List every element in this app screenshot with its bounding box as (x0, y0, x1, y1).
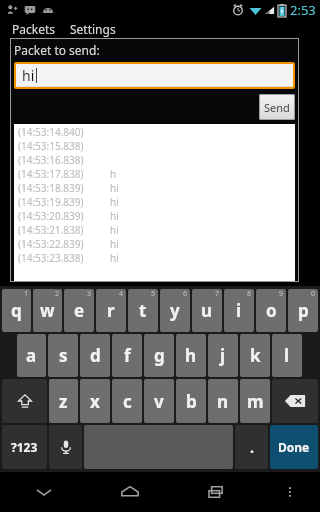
staticText: hi (110, 209, 119, 223)
button[interactable]: Shift (2, 379, 47, 423)
staticText: Packets (12, 21, 56, 37)
button[interactable]: hi (16, 64, 293, 87)
staticText: (14:53:14.840) (18, 125, 84, 139)
button[interactable]: b (176, 379, 206, 423)
button[interactable]: Voice input (49, 425, 82, 469)
staticText: f (124, 344, 131, 367)
staticText: hi (22, 66, 35, 85)
staticText: g (154, 344, 165, 367)
button[interactable]: e (64, 289, 94, 332)
button[interactable]: Recent apps (173, 472, 259, 512)
button[interactable]: o (256, 289, 286, 332)
button[interactable]: Settings (68, 20, 118, 38)
staticText: 7 (215, 289, 220, 299)
staticText: u (201, 299, 213, 322)
button[interactable]: j (208, 334, 238, 377)
staticText: (14:53:18.839) (18, 181, 84, 195)
staticText: m (247, 390, 264, 413)
staticText: hi (110, 195, 119, 209)
staticText: hi (110, 181, 119, 195)
button[interactable]: d (80, 334, 110, 377)
staticText: c (123, 390, 132, 413)
button[interactable]: w (33, 289, 62, 332)
staticText: o (266, 299, 277, 322)
button[interactable]: Send (259, 94, 295, 120)
staticText: t (139, 299, 147, 322)
staticText: hi (110, 237, 119, 251)
button[interactable]: s (48, 334, 78, 377)
button[interactable]: n (208, 379, 238, 423)
button[interactable]: f (112, 334, 142, 377)
staticText: 9 (279, 289, 284, 299)
staticText: 8 (247, 289, 252, 299)
staticText: j (220, 344, 226, 367)
staticText: 3 (87, 289, 92, 299)
button[interactable]: r (96, 289, 126, 332)
button[interactable]: u (192, 289, 222, 332)
button[interactable]: Home (87, 472, 173, 512)
button[interactable]: Hide keyboard (0, 472, 87, 512)
staticText: x (90, 390, 100, 413)
staticText: ?123 (11, 439, 38, 455)
staticText: v (154, 390, 164, 413)
staticText: 0 (311, 289, 316, 299)
button[interactable]: h (176, 334, 206, 377)
staticText: h (110, 167, 117, 181)
staticText: 2 (55, 289, 60, 299)
staticText: Settings (70, 21, 116, 37)
staticText: hi (110, 251, 119, 265)
button[interactable]: l (272, 334, 302, 377)
staticText: h (185, 344, 197, 367)
staticText: e (74, 299, 85, 322)
staticText: s (59, 344, 68, 367)
staticText: . (250, 438, 254, 457)
staticText: p (298, 299, 309, 322)
button[interactable]: t (128, 289, 158, 332)
staticText: hi (110, 223, 119, 237)
button[interactable]: ?123 (2, 425, 47, 469)
button[interactable]: m (240, 379, 270, 423)
staticText: (14:53:19.839) (18, 195, 84, 209)
button[interactable]: i (224, 289, 254, 332)
staticText: Packet to send: (14, 42, 100, 58)
staticText: 5 (151, 289, 156, 299)
button[interactable]: k (240, 334, 270, 377)
button[interactable]: a (17, 334, 46, 377)
staticText: w (40, 299, 55, 322)
button[interactable]: v (144, 379, 174, 423)
staticText: (14:53:15.838) (18, 139, 84, 153)
staticText: (14:53:20.839) (18, 209, 84, 223)
button[interactable]: (14:53:14.840) (14, 124, 295, 282)
button[interactable]: x (80, 379, 110, 423)
button[interactable]: z (49, 379, 78, 423)
button[interactable]: q (2, 289, 31, 332)
staticText: 2:53 (290, 1, 316, 19)
staticText: q (11, 299, 22, 322)
staticText: (14:53:17.838) (18, 167, 84, 181)
button[interactable]: y (160, 289, 190, 332)
button[interactable]: More options (259, 472, 320, 512)
staticText: r (107, 299, 115, 322)
staticText: b (186, 390, 197, 413)
staticText: (14:53:22.839) (18, 237, 84, 251)
staticText: y (170, 299, 180, 322)
button[interactable]: p (288, 289, 318, 332)
button[interactable]: Done (270, 425, 318, 469)
button[interactable]: Backspace (272, 379, 318, 423)
staticText: n (217, 390, 229, 413)
staticText: 6 (183, 289, 188, 299)
button[interactable]: g (144, 334, 174, 377)
button[interactable]: . (235, 425, 268, 469)
staticText: d (90, 344, 101, 367)
staticText: k (250, 344, 261, 367)
staticText: z (59, 390, 68, 413)
button[interactable]: c (112, 379, 142, 423)
button[interactable]: Packets (10, 20, 58, 38)
staticText: Send (264, 100, 290, 115)
staticText: Done (278, 439, 310, 455)
staticText: 1 (24, 289, 29, 299)
staticText: (14:53:16.838) (18, 153, 84, 167)
staticText: (14:53:21.838) (18, 223, 84, 237)
staticText: i (236, 299, 242, 322)
